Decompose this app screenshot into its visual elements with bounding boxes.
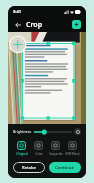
button[interactable]: Reset brightness	[74, 128, 81, 135]
button[interactable]: Retake	[13, 162, 45, 173]
button[interactable]: Brightness slider	[34, 128, 72, 136]
button[interactable]: Color	[30, 140, 47, 157]
button[interactable]: Original	[13, 140, 30, 157]
staticText: B/W Black	[65, 152, 80, 156]
button[interactable]: B/W Black	[64, 140, 81, 157]
button[interactable]: Grayscale	[47, 140, 64, 157]
staticText: Original	[16, 152, 28, 156]
button[interactable]: Continue	[49, 162, 81, 173]
staticText: Color	[35, 152, 43, 156]
button[interactable]: Auto enhance	[72, 20, 81, 29]
staticText: Brightness	[13, 129, 32, 134]
staticText: Retake	[22, 165, 36, 171]
staticText: Grayscale	[49, 152, 63, 156]
staticText: Continue	[55, 165, 75, 171]
staticText: Crop	[26, 20, 43, 30]
button[interactable]: Back	[13, 20, 23, 30]
staticText: 9:41	[13, 9, 21, 14]
